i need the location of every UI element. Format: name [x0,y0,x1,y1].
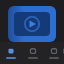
button[interactable]: Artwork [8,6,56,42]
button[interactable]: Home [0,47,22,59]
button[interactable]: Library [22,47,44,59]
other: Artwork [14,12,50,36]
button[interactable]: Search [44,47,64,59]
